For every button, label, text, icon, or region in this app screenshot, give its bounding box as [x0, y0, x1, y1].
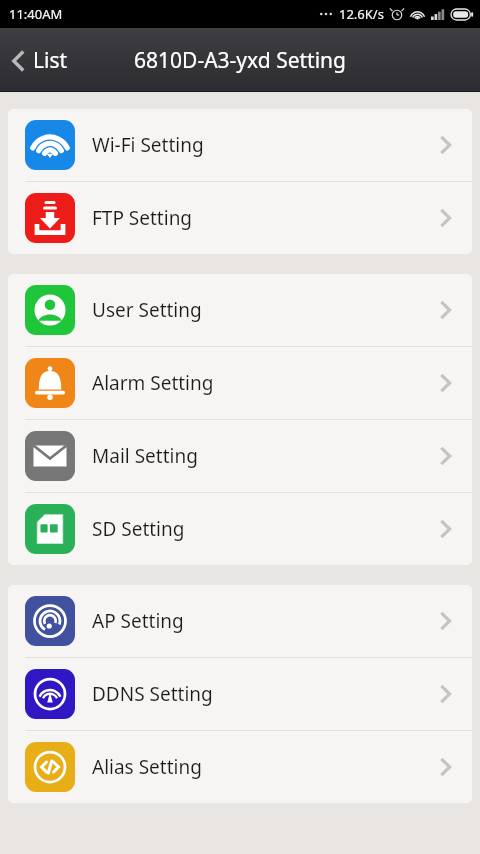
staticText: User Setting	[92, 297, 439, 323]
button[interactable]: DDNS Setting	[8, 658, 472, 730]
button[interactable]: FTP Setting	[8, 182, 472, 254]
button[interactable]: Wi-Fi Setting	[8, 109, 472, 181]
staticText: AP Setting	[92, 608, 439, 634]
button[interactable]: Alarm Setting	[8, 347, 472, 419]
staticText: DDNS Setting	[92, 681, 439, 707]
staticText: 6810D-A3-yxd Setting	[134, 46, 346, 75]
staticText: FTP Setting	[92, 205, 439, 231]
button[interactable]: Alias Setting	[8, 731, 472, 803]
staticText: Wi-Fi Setting	[92, 132, 439, 158]
staticText: Alarm Setting	[92, 370, 439, 396]
button[interactable]: Back to List	[0, 38, 82, 83]
button[interactable]: AP Setting	[8, 585, 472, 657]
staticText: Mail Setting	[92, 443, 439, 469]
staticText: SD Setting	[92, 516, 439, 542]
button[interactable]: User Setting	[8, 274, 472, 346]
button[interactable]: Mail Setting	[8, 420, 472, 492]
button[interactable]: SD Setting	[8, 493, 472, 565]
staticText: List	[33, 46, 68, 75]
staticText: 12.6K/s	[339, 5, 384, 23]
staticText: 11:40AM	[9, 5, 63, 23]
staticText: Alias Setting	[92, 754, 439, 780]
